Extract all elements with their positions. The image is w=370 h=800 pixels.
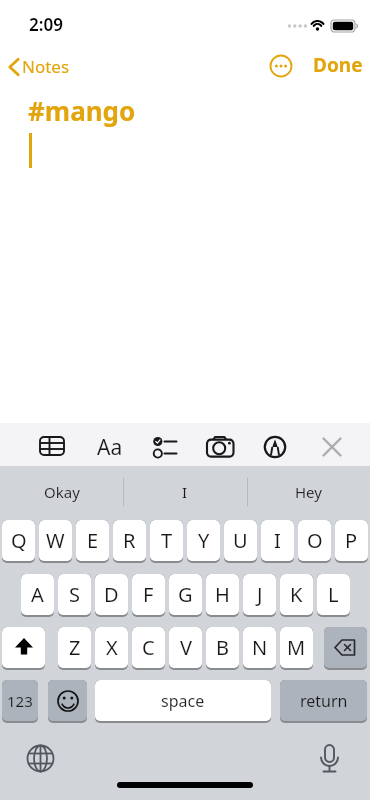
button[interactable]: I [123,466,247,518]
staticText: X [106,634,118,661]
button[interactable]: F [132,574,165,617]
button[interactable]: Z [58,627,91,670]
staticText: L [328,581,339,608]
button[interactable] [264,436,286,458]
staticText: G [178,581,193,608]
button[interactable] [2,627,45,670]
staticText: Notes [22,55,70,78]
staticText: Okay [44,482,80,502]
button[interactable] [318,744,341,774]
button[interactable]: space [95,680,271,723]
button[interactable]: Okay [0,466,123,518]
button[interactable] [36,430,68,462]
button[interactable]: J [243,574,276,617]
staticText: 123 [7,691,33,711]
button[interactable]: X [95,627,128,670]
staticText: return [300,690,348,712]
button[interactable] [324,627,367,670]
staticText: I [182,482,188,502]
button[interactable]: Aa [92,430,126,462]
staticText: A [31,581,44,608]
staticText: C [142,634,155,661]
button[interactable]: S [58,574,91,617]
staticText: S [69,581,80,608]
button[interactable]: W [39,520,72,563]
button[interactable]: K [280,574,313,617]
staticText: Y [198,527,210,554]
button[interactable]: B [206,627,239,670]
button[interactable]: G [169,574,202,617]
staticText: T [161,527,173,554]
button[interactable]: N [243,627,276,670]
staticText: F [143,581,154,608]
button[interactable] [146,430,179,462]
button[interactable]: Hey [247,466,370,518]
button[interactable] [204,430,236,462]
button[interactable] [48,680,87,723]
staticText: 2:09 [29,13,63,36]
staticText: space [161,690,205,712]
button[interactable]: O [298,520,331,563]
button[interactable]: 123 [2,680,38,723]
button[interactable]: L [317,574,350,617]
staticText: Done [313,52,363,78]
button[interactable] [322,437,342,457]
staticText: O [307,527,323,554]
button[interactable]: P [335,520,368,563]
button[interactable]: E [76,520,109,563]
button[interactable]: U [224,520,257,563]
staticText: N [252,634,268,661]
button[interactable]: V [169,627,202,670]
button[interactable]: Q [2,520,35,563]
staticText: Aa [97,433,123,462]
staticText: E [87,527,99,554]
staticText: #mango [28,93,136,128]
staticText: B [216,634,229,661]
staticText: M [287,634,306,661]
button[interactable]: H [206,574,239,617]
staticText: I [274,527,281,554]
staticText: R [123,527,136,554]
staticText: J [257,581,263,608]
button[interactable]: C [132,627,165,670]
button[interactable]: M [280,627,313,670]
staticText: P [345,527,358,554]
button[interactable]: D [95,574,128,617]
staticText: Z [69,634,81,661]
button[interactable]: Notes [4,52,82,80]
staticText: H [215,581,230,608]
button[interactable]: I [261,520,294,563]
button[interactable]: T [150,520,183,563]
staticText: W [46,527,65,554]
staticText: Hey [295,482,322,502]
button[interactable]: return [280,680,367,723]
button[interactable] [269,54,293,78]
button[interactable]: Done [313,52,363,78]
button[interactable]: A [21,574,54,617]
staticText: K [290,581,303,608]
staticText: V [180,634,192,661]
staticText: Q [11,527,27,554]
button[interactable]: Y [187,520,220,563]
button[interactable] [26,744,55,773]
staticText: D [104,581,119,608]
button[interactable]: R [113,520,146,563]
staticText: U [233,527,248,554]
